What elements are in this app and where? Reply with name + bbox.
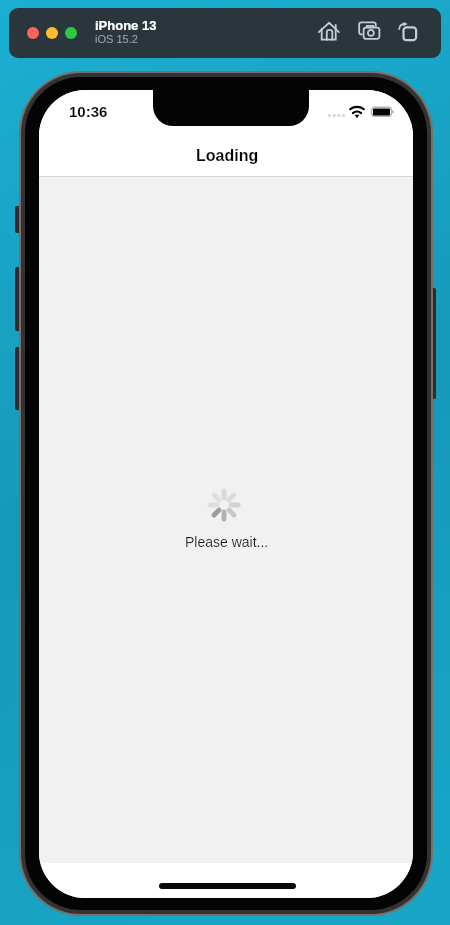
button[interactable] [27,27,39,39]
button[interactable]: Rotate [398,21,420,43]
button[interactable] [46,27,58,39]
staticText: iPhone 13 [95,18,157,33]
button[interactable]: Screenshot [358,21,380,43]
staticText: 10:36 [69,103,108,120]
button[interactable] [65,27,77,39]
staticText: iOS 15.2 [95,33,138,45]
staticText: Loading [196,147,259,165]
button[interactable]: Home [318,21,340,43]
staticText: Please wait... [185,534,269,550]
